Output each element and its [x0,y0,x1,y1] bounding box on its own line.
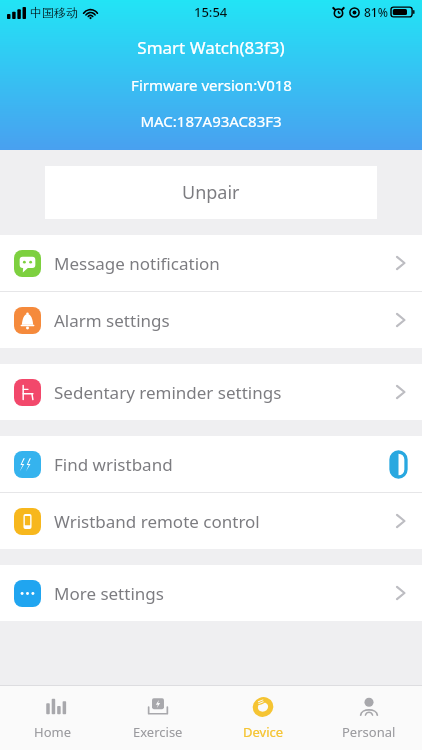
button[interactable]: Alarm settings [0,292,422,348]
staticText: Exercise [133,723,183,741]
button[interactable]: Home [0,686,105,750]
staticText: 中国移动 [30,5,78,20]
button[interactable]: Sedentary reminder settings [0,364,422,420]
staticText: Home [34,723,71,741]
staticText: More settings [54,582,164,605]
button[interactable]: Personal [316,686,422,750]
button[interactable]: Exercise [105,686,210,750]
staticText: Device [243,723,284,741]
staticText: Smart Watch(83f3) [137,36,285,59]
button[interactable]: Message notification [0,235,422,291]
staticText: Unpair [182,180,240,205]
button[interactable]: Wristband remote control [0,493,422,549]
staticText: Personal [342,723,396,741]
staticText: Firmware version:V018 [131,75,292,95]
staticText: Wristband remote control [54,510,260,533]
staticText: 81% [364,4,388,20]
button[interactable]: Device [210,686,316,750]
staticText: Find wristband [54,453,173,476]
staticText: Alarm settings [54,309,170,332]
staticText: MAC:187A93AC83F3 [140,111,282,131]
staticText: 15:54 [194,3,228,21]
staticText: Message notification [54,252,220,275]
button[interactable]: Find wristband [0,436,422,492]
button[interactable]: More settings [0,565,422,621]
button[interactable]: Unpair [45,166,377,219]
staticText: Sedentary reminder settings [54,381,282,404]
